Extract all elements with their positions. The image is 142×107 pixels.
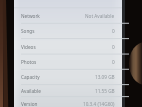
staticText: 13.09 GB: [95, 74, 115, 80]
staticText: Not Available: [85, 13, 115, 19]
staticText: Songs: [21, 28, 35, 34]
button[interactable]: Photos: [14, 54, 122, 69]
staticText: Available: [21, 88, 41, 94]
staticText: 0: [112, 28, 115, 34]
staticText: Network: [21, 13, 40, 19]
staticText: 11.55 GB: [95, 88, 115, 94]
button[interactable]: Network: [14, 8, 122, 23]
staticText: Version: [21, 101, 38, 107]
staticText: Photos: [21, 59, 37, 65]
button[interactable]: Version: [14, 97, 122, 107]
staticText: 10.3.4 (14G60): [83, 101, 115, 107]
button[interactable]: Available: [14, 85, 122, 97]
staticText: Videos: [21, 44, 36, 50]
staticText: 0: [112, 59, 115, 65]
staticText: Capacity: [21, 74, 40, 80]
staticText: 0: [112, 44, 115, 50]
button[interactable]: Videos: [14, 39, 122, 54]
button[interactable]: Songs: [14, 23, 122, 38]
button[interactable]: Capacity: [14, 69, 122, 84]
